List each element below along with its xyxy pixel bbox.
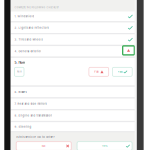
staticText: Pass bbox=[117, 70, 122, 73]
button[interactable]: Fail bbox=[89, 67, 109, 76]
staticText: Is this vehicle OK to drive? bbox=[16, 135, 54, 139]
button[interactable]: 6. Brakes bbox=[11, 87, 135, 97]
button[interactable]: 2. Lights and reflectors bbox=[11, 22, 135, 33]
button[interactable]: 4. General exterior bbox=[11, 46, 135, 57]
staticText: 8. Engine and transmission bbox=[14, 114, 52, 117]
staticText: No bbox=[42, 144, 46, 148]
button[interactable]: 3. Tires and wheels bbox=[11, 34, 135, 45]
staticText: 2. Lights and reflectors bbox=[14, 26, 48, 29]
button[interactable]: N/A bbox=[14, 67, 24, 76]
staticText: 4. General exterior bbox=[14, 50, 41, 53]
button[interactable]: 8. Engine and transmission bbox=[11, 110, 135, 121]
staticText: COMPLETE THE FOLLOWING CHECKLIST bbox=[14, 6, 58, 9]
button[interactable]: 9. Steering bbox=[11, 122, 135, 131]
button[interactable]: 7. Rear and side mirrors bbox=[11, 99, 135, 109]
staticText: Fail bbox=[94, 70, 99, 73]
staticText: Yes bbox=[102, 144, 107, 148]
button[interactable]: Pass bbox=[112, 67, 132, 76]
staticText: 9. Steering bbox=[14, 125, 31, 128]
staticText: 1. Windshield bbox=[14, 15, 34, 18]
staticText: 7. Rear and side mirrors bbox=[14, 102, 46, 105]
staticText: 6. Brakes bbox=[14, 90, 26, 94]
button[interactable]: 1. Windshield bbox=[11, 11, 135, 21]
staticText: 3. Tires and wheels bbox=[14, 38, 42, 41]
button[interactable]: Yes bbox=[77, 142, 132, 150]
staticText: 5. Horn bbox=[14, 61, 25, 65]
staticText: N/A bbox=[17, 70, 21, 73]
button[interactable]: No bbox=[16, 142, 71, 150]
